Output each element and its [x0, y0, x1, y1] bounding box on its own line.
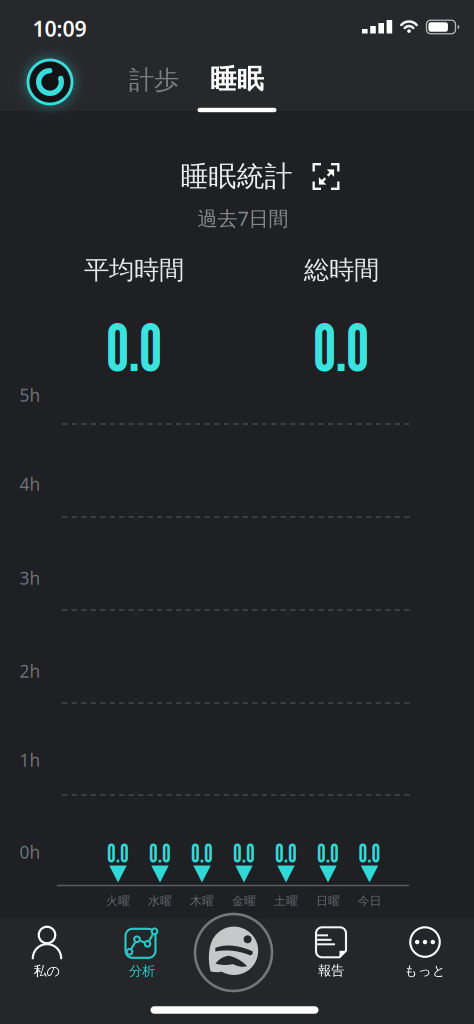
staticText: 0.0	[358, 839, 380, 868]
staticText: 1h	[19, 748, 40, 771]
staticText: 2h	[19, 659, 40, 682]
button[interactable]: 睡眠	[210, 63, 264, 95]
staticText: 私の	[33, 963, 60, 979]
button[interactable]: 計歩	[129, 64, 179, 95]
staticText: 過去7日間	[197, 205, 288, 231]
staticText: 木曜	[190, 894, 214, 908]
staticText: 土曜	[274, 894, 298, 908]
staticText: 4h	[19, 472, 40, 495]
staticText: 計歩	[129, 64, 179, 95]
staticText: 今日	[357, 894, 381, 908]
staticText: 総時間	[304, 254, 379, 285]
button[interactable]: 私の	[30, 926, 63, 979]
staticText: 火曜	[106, 894, 130, 908]
button[interactable]: Home	[193, 912, 273, 992]
button[interactable]: 報告	[315, 926, 347, 979]
staticText: 0.0	[191, 839, 213, 868]
staticText: 水曜	[148, 894, 172, 908]
staticText: 0h	[19, 840, 40, 863]
staticText: 0.0	[106, 308, 162, 386]
staticText: 10:09	[32, 14, 86, 43]
staticText: 睡眠	[210, 63, 264, 95]
staticText: 0.0	[107, 839, 129, 868]
staticText: 0.0	[275, 839, 297, 868]
staticText: 5h	[19, 383, 40, 406]
button[interactable]: 分析	[125, 926, 159, 979]
staticText: 0.0	[313, 308, 369, 386]
staticText: 平均時間	[84, 254, 184, 285]
staticText: 金曜	[232, 894, 256, 908]
staticText: 0.0	[233, 839, 255, 868]
staticText: 0.0	[317, 839, 339, 868]
staticText: 分析	[129, 963, 155, 979]
staticText: 日曜	[316, 894, 340, 908]
staticText: 0.0	[149, 839, 171, 868]
staticText: 報告	[318, 962, 344, 979]
staticText: 3h	[19, 566, 40, 589]
button[interactable]: もっと	[404, 926, 446, 979]
staticText: もっと	[404, 963, 446, 979]
staticText: 睡眠統計	[180, 159, 292, 194]
button[interactable]: Expand	[312, 163, 339, 190]
